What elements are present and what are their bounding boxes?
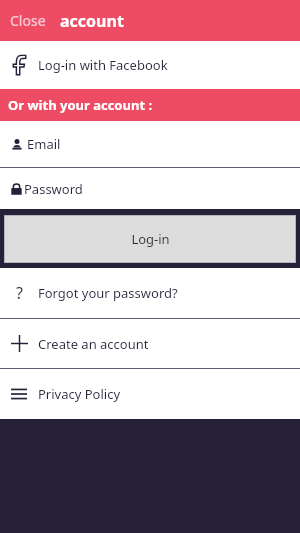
other: Help [16, 282, 23, 304]
staticText: Email [27, 135, 61, 153]
other: Email [12, 139, 22, 150]
staticText: Or with your account : [8, 96, 153, 114]
button[interactable]: Help [0, 268, 300, 318]
staticText: ? [16, 282, 23, 304]
button[interactable]: Password [0, 168, 300, 209]
button[interactable]: Email [0, 121, 300, 167]
button[interactable]: Privacy Policy [0, 369, 300, 419]
staticText: Forgot your password? [38, 284, 178, 302]
staticText: account [60, 10, 124, 32]
staticText: Log-in with Facebook [38, 56, 168, 74]
other: Create an account [11, 335, 28, 352]
other: Facebook [13, 55, 26, 75]
button[interactable]: Close [8, 7, 48, 34]
button[interactable]: Facebook [0, 41, 300, 89]
button[interactable]: Create an account [0, 319, 300, 368]
staticText: Log-in [131, 230, 170, 248]
button[interactable]: Log-in [4, 215, 296, 263]
staticText: Privacy Policy [38, 385, 121, 403]
other: Password [11, 183, 22, 195]
other: Privacy Policy [11, 388, 27, 400]
staticText: Password [24, 180, 83, 198]
staticText: Close [10, 11, 46, 30]
staticText: Create an account [38, 335, 149, 353]
